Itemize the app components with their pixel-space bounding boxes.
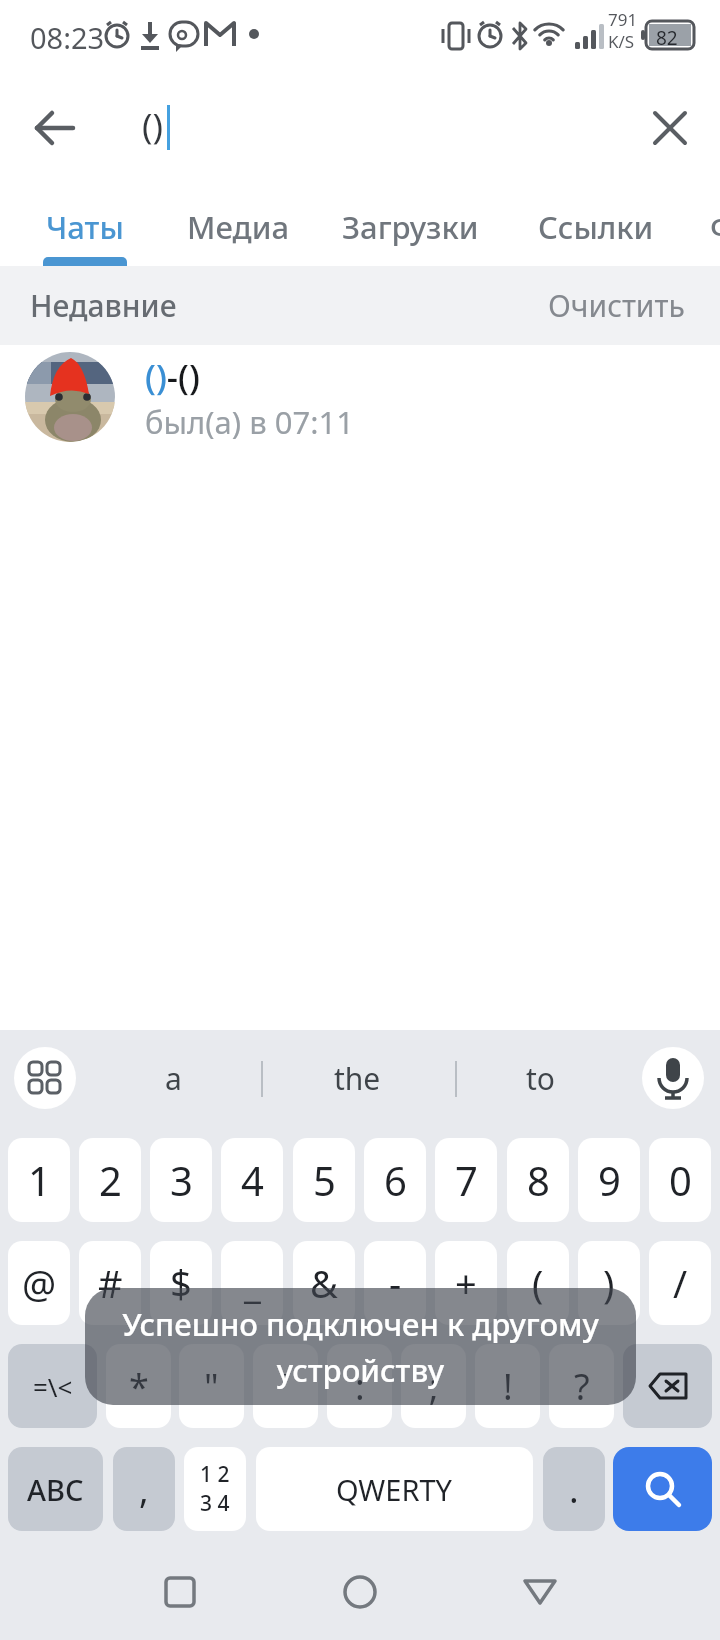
button[interactable]: * bbox=[106, 1344, 171, 1428]
button[interactable]: 0 bbox=[649, 1138, 711, 1222]
staticText: # bbox=[98, 1257, 123, 1309]
button[interactable]: 8 bbox=[507, 1138, 569, 1222]
staticText: ()-() bbox=[145, 353, 200, 401]
staticText: * bbox=[129, 1362, 149, 1411]
staticText: 2 bbox=[99, 1153, 122, 1207]
button[interactable]: . bbox=[543, 1447, 605, 1531]
button[interactable]: to bbox=[477, 1030, 603, 1127]
staticText: 791 bbox=[608, 8, 638, 31]
button[interactable]: ) bbox=[578, 1241, 640, 1325]
staticText: был(а) в 07:11 bbox=[145, 401, 354, 443]
staticText: ! bbox=[503, 1362, 513, 1411]
button[interactable]: 7 bbox=[435, 1138, 497, 1222]
staticText: Успешно подключен к другому устройству bbox=[122, 1303, 599, 1391]
staticText: K/S bbox=[608, 30, 635, 53]
staticText: 6 bbox=[384, 1153, 407, 1207]
staticText: / bbox=[673, 1257, 688, 1309]
button[interactable] bbox=[640, 98, 700, 158]
staticText: 3 bbox=[170, 1153, 193, 1207]
button[interactable]: Ссылки bbox=[528, 183, 663, 271]
staticText: ABC bbox=[27, 1470, 84, 1509]
button[interactable]: $ bbox=[150, 1241, 212, 1325]
button[interactable]: Медиа bbox=[175, 183, 300, 271]
button[interactable] bbox=[14, 1047, 76, 1109]
button[interactable]: Файлы bbox=[710, 183, 720, 271]
staticText: ; bbox=[429, 1362, 439, 1411]
button[interactable]: / bbox=[649, 1241, 711, 1325]
button[interactable]: 5 bbox=[293, 1138, 355, 1222]
button[interactable] bbox=[330, 1562, 390, 1622]
button[interactable]: a bbox=[110, 1030, 236, 1127]
button[interactable]: ! bbox=[475, 1344, 540, 1428]
staticText: ? bbox=[574, 1362, 590, 1411]
staticText: the bbox=[334, 1058, 381, 1099]
button[interactable]: _ bbox=[221, 1241, 283, 1325]
button[interactable]: # bbox=[79, 1241, 141, 1325]
staticText: 7 bbox=[455, 1153, 478, 1207]
staticText: 3 4 bbox=[200, 1489, 230, 1518]
button[interactable]: ? bbox=[549, 1344, 614, 1428]
staticText: $ bbox=[170, 1257, 192, 1309]
staticText: ' bbox=[281, 1362, 290, 1411]
button[interactable]: 6 bbox=[364, 1138, 426, 1222]
button[interactable]: ; bbox=[401, 1344, 466, 1428]
button[interactable]: @ bbox=[8, 1241, 70, 1325]
button[interactable]: ABC bbox=[8, 1447, 103, 1531]
staticText: 5 bbox=[313, 1153, 336, 1207]
button[interactable]: Чаты bbox=[30, 183, 140, 271]
staticText: " bbox=[204, 1362, 219, 1411]
staticText: Ссылки bbox=[538, 206, 654, 248]
button[interactable] bbox=[623, 1344, 712, 1428]
staticText: - bbox=[389, 1257, 402, 1309]
button[interactable]: - bbox=[364, 1241, 426, 1325]
button[interactable] bbox=[25, 98, 85, 158]
staticText: 1 bbox=[28, 1153, 51, 1207]
staticText: Чаты bbox=[46, 206, 124, 248]
button[interactable]: Загрузки bbox=[335, 183, 485, 271]
button[interactable]: 4 bbox=[221, 1138, 283, 1222]
staticText: () bbox=[142, 102, 164, 150]
button[interactable]: : bbox=[327, 1344, 392, 1428]
staticText: _ bbox=[244, 1257, 261, 1309]
button[interactable] bbox=[510, 1562, 570, 1622]
button[interactable]: 1 2 bbox=[184, 1447, 246, 1531]
button[interactable] bbox=[613, 1447, 712, 1531]
staticText: Недавние bbox=[30, 285, 177, 326]
button[interactable]: ' bbox=[253, 1344, 318, 1428]
staticText: 08:23 bbox=[30, 18, 105, 57]
staticText: ) bbox=[603, 1257, 615, 1309]
staticText: 82 bbox=[656, 25, 678, 51]
button[interactable] bbox=[150, 1562, 210, 1622]
button[interactable]: 1 bbox=[8, 1138, 70, 1222]
staticText: , bbox=[139, 1465, 149, 1514]
staticText: 1 2 bbox=[200, 1460, 230, 1489]
button[interactable] bbox=[642, 1047, 704, 1109]
button[interactable]: =\< bbox=[8, 1344, 97, 1428]
staticText: 9 bbox=[598, 1153, 621, 1207]
button[interactable]: 3 bbox=[150, 1138, 212, 1222]
staticText: Файлы bbox=[710, 206, 720, 248]
staticText: to bbox=[526, 1058, 555, 1099]
staticText: 4 bbox=[241, 1153, 264, 1207]
button[interactable]: " bbox=[179, 1344, 244, 1428]
staticText: . bbox=[569, 1465, 579, 1514]
button[interactable]: + bbox=[435, 1241, 497, 1325]
button[interactable]: the bbox=[294, 1030, 420, 1127]
button[interactable]: 9 bbox=[578, 1138, 640, 1222]
staticText: =\< bbox=[33, 1369, 73, 1404]
button[interactable]: & bbox=[293, 1241, 355, 1325]
button[interactable]: , bbox=[113, 1447, 175, 1531]
staticText: Загрузки bbox=[342, 206, 479, 248]
staticText: Медиа bbox=[187, 206, 289, 248]
staticText: & bbox=[310, 1257, 338, 1309]
staticText: + bbox=[455, 1257, 477, 1309]
button[interactable]: QWERTY bbox=[256, 1447, 533, 1531]
staticText: 0 bbox=[669, 1153, 692, 1207]
button[interactable]: ( bbox=[507, 1241, 569, 1325]
staticText: : bbox=[355, 1362, 365, 1411]
button[interactable]: 2 bbox=[79, 1138, 141, 1222]
staticText: 8 bbox=[527, 1153, 550, 1207]
button[interactable]: Очистить bbox=[0, 266, 685, 345]
button[interactable]: ()-() bbox=[0, 345, 720, 450]
staticText: Очистить bbox=[548, 285, 685, 326]
